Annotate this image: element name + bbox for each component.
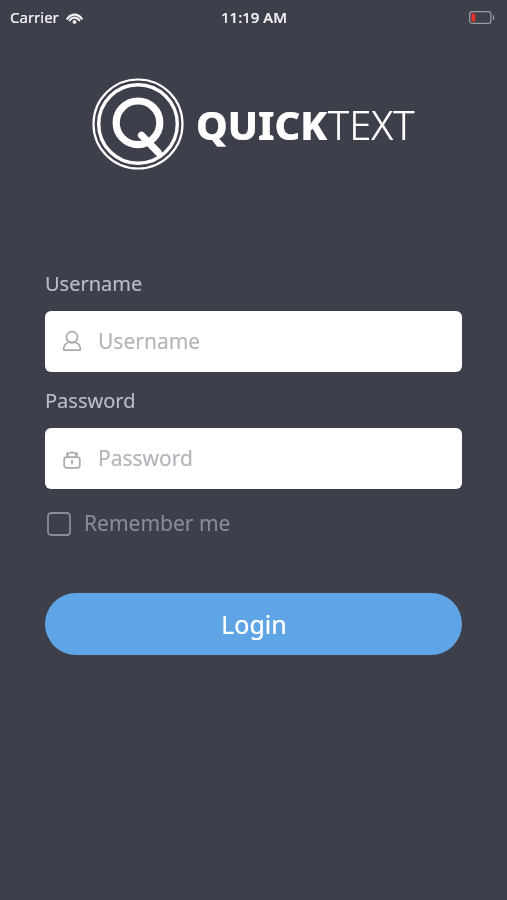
staticText: Username: [98, 327, 201, 356]
button[interactable]: Login: [45, 593, 462, 655]
staticText: Carrier: [10, 7, 59, 27]
staticText: Password: [98, 444, 193, 473]
staticText: Login: [221, 607, 287, 641]
staticText: Remember me: [84, 509, 231, 538]
button[interactable]: Username: [45, 311, 462, 372]
staticText: TEXT: [328, 97, 415, 151]
staticText: Password: [45, 387, 136, 414]
staticText: Username: [45, 270, 143, 297]
button[interactable]: Remember me: [45, 505, 233, 542]
staticText: 11:19 AM: [221, 7, 287, 27]
staticText: QUICK: [196, 97, 328, 151]
button[interactable]: Password: [45, 428, 462, 489]
